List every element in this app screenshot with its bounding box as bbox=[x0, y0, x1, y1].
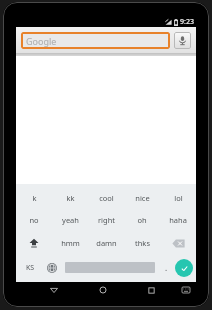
staticText: thks bbox=[135, 238, 150, 248]
staticText: oh bbox=[137, 215, 147, 225]
button[interactable]: yeah bbox=[52, 209, 88, 231]
button[interactable]: Home bbox=[78, 282, 127, 298]
staticText: nice bbox=[135, 193, 150, 203]
button[interactable]: haha bbox=[160, 209, 196, 231]
staticText: lol bbox=[174, 193, 183, 203]
button[interactable]: cool bbox=[88, 187, 124, 209]
button[interactable]: Shift bbox=[16, 231, 52, 255]
button[interactable]: kk bbox=[52, 187, 88, 209]
button[interactable]: Change keyboard bbox=[176, 282, 196, 298]
button[interactable]: nice bbox=[124, 187, 160, 209]
button[interactable]: lol bbox=[160, 187, 196, 209]
button[interactable]: . bbox=[157, 255, 175, 280]
staticText: . bbox=[165, 262, 168, 273]
button[interactable]: KS bbox=[19, 255, 41, 280]
button[interactable]: oh bbox=[124, 209, 160, 231]
staticText: 9:23 bbox=[180, 17, 194, 27]
staticText: k bbox=[32, 193, 37, 203]
staticText: cool bbox=[99, 193, 114, 203]
button[interactable]: Enter bbox=[175, 259, 193, 277]
button[interactable]: no bbox=[16, 209, 52, 231]
staticText: kk bbox=[66, 193, 75, 203]
button[interactable]: Delete bbox=[160, 231, 196, 255]
staticText: no bbox=[29, 215, 39, 225]
button[interactable]: right bbox=[88, 209, 124, 231]
button[interactable]: Recent apps bbox=[127, 282, 176, 298]
button[interactable]: Hide keyboard bbox=[29, 282, 78, 298]
button[interactable]: Switch language bbox=[41, 255, 63, 280]
staticText: yeah bbox=[62, 215, 79, 225]
button[interactable]: k bbox=[16, 187, 52, 209]
staticText: damn bbox=[96, 238, 117, 248]
staticText: right bbox=[98, 215, 115, 225]
button[interactable]: hmm bbox=[52, 231, 88, 255]
button[interactable]: damn bbox=[88, 231, 124, 255]
staticText: Google bbox=[26, 35, 57, 47]
button[interactable]: Google bbox=[21, 32, 170, 49]
staticText: KS bbox=[26, 263, 35, 273]
staticText: haha bbox=[169, 215, 187, 225]
button[interactable]: thks bbox=[124, 231, 160, 255]
button[interactable]: Voice search bbox=[174, 32, 191, 49]
staticText: hmm bbox=[61, 238, 80, 248]
